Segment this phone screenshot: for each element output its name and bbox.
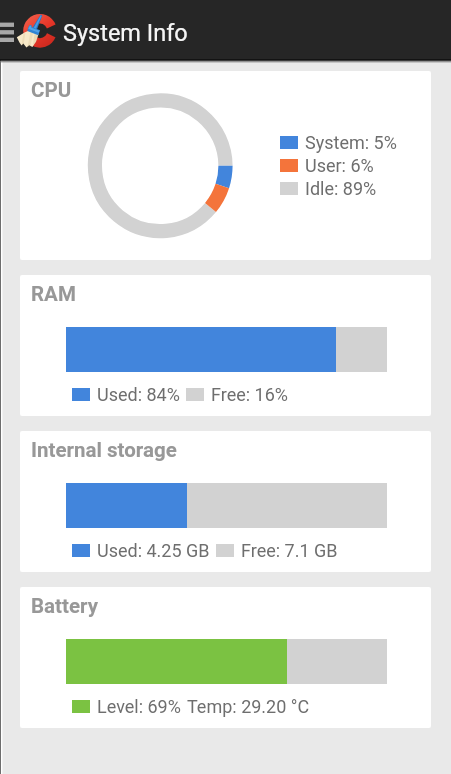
staticText: Temp: 29.20 °C bbox=[187, 696, 310, 717]
staticText: Internal storage bbox=[31, 438, 177, 462]
staticText: Used: 4.25 GB bbox=[97, 540, 210, 561]
staticText: RAM bbox=[31, 282, 76, 306]
staticText: Used: 84% bbox=[97, 384, 180, 405]
button[interactable]: Open navigation menu bbox=[0, 0, 18, 60]
staticText: User: 6% bbox=[305, 155, 374, 176]
staticText: Battery bbox=[31, 594, 98, 618]
staticText: Free: 16% bbox=[211, 384, 288, 405]
staticText: System: 5% bbox=[305, 132, 397, 153]
staticText: System Info bbox=[63, 19, 188, 47]
button[interactable]: Internal storage bbox=[20, 431, 431, 572]
button[interactable]: CPU bbox=[20, 71, 431, 260]
staticText: CPU bbox=[31, 78, 72, 102]
staticText: Idle: 89% bbox=[305, 178, 377, 199]
button[interactable]: Battery bbox=[20, 587, 431, 728]
staticText: Level: 69% bbox=[97, 696, 181, 717]
button[interactable]: RAM bbox=[20, 275, 431, 416]
staticText: Free: 7.1 GB bbox=[241, 540, 338, 561]
